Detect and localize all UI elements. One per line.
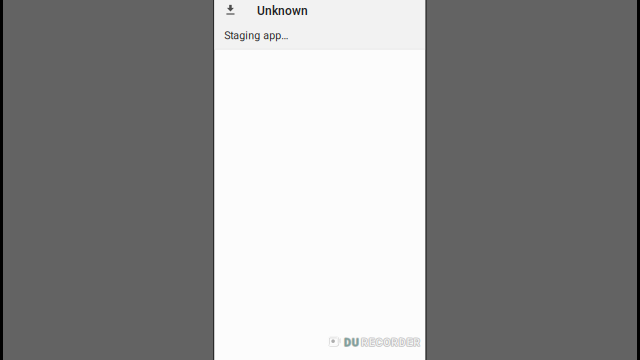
staticText: DU	[344, 336, 359, 348]
staticText: DU	[344, 337, 358, 349]
staticText: RECORDER	[361, 336, 421, 348]
staticText: DU	[344, 336, 359, 349]
staticText: RECORDER	[361, 336, 420, 349]
staticText: RECORDER	[360, 336, 419, 348]
staticText: RECORDER	[360, 337, 419, 349]
button[interactable]: Unknown	[214, 0, 425, 49]
staticText: RECORDER	[361, 337, 420, 350]
staticText: RECORDER	[361, 337, 421, 349]
staticText: DU	[345, 336, 359, 348]
staticText: DU	[343, 336, 358, 349]
staticText: Staging app…	[224, 29, 288, 42]
staticText: DU	[344, 337, 359, 350]
staticText: DU	[345, 337, 359, 349]
staticText: RECORDER	[360, 336, 419, 349]
staticText: DU	[344, 336, 358, 348]
staticText: Unknown	[257, 4, 308, 18]
staticText: RECORDER	[361, 336, 420, 348]
staticText: RECORDER	[362, 336, 421, 349]
staticText: DU	[345, 336, 360, 349]
